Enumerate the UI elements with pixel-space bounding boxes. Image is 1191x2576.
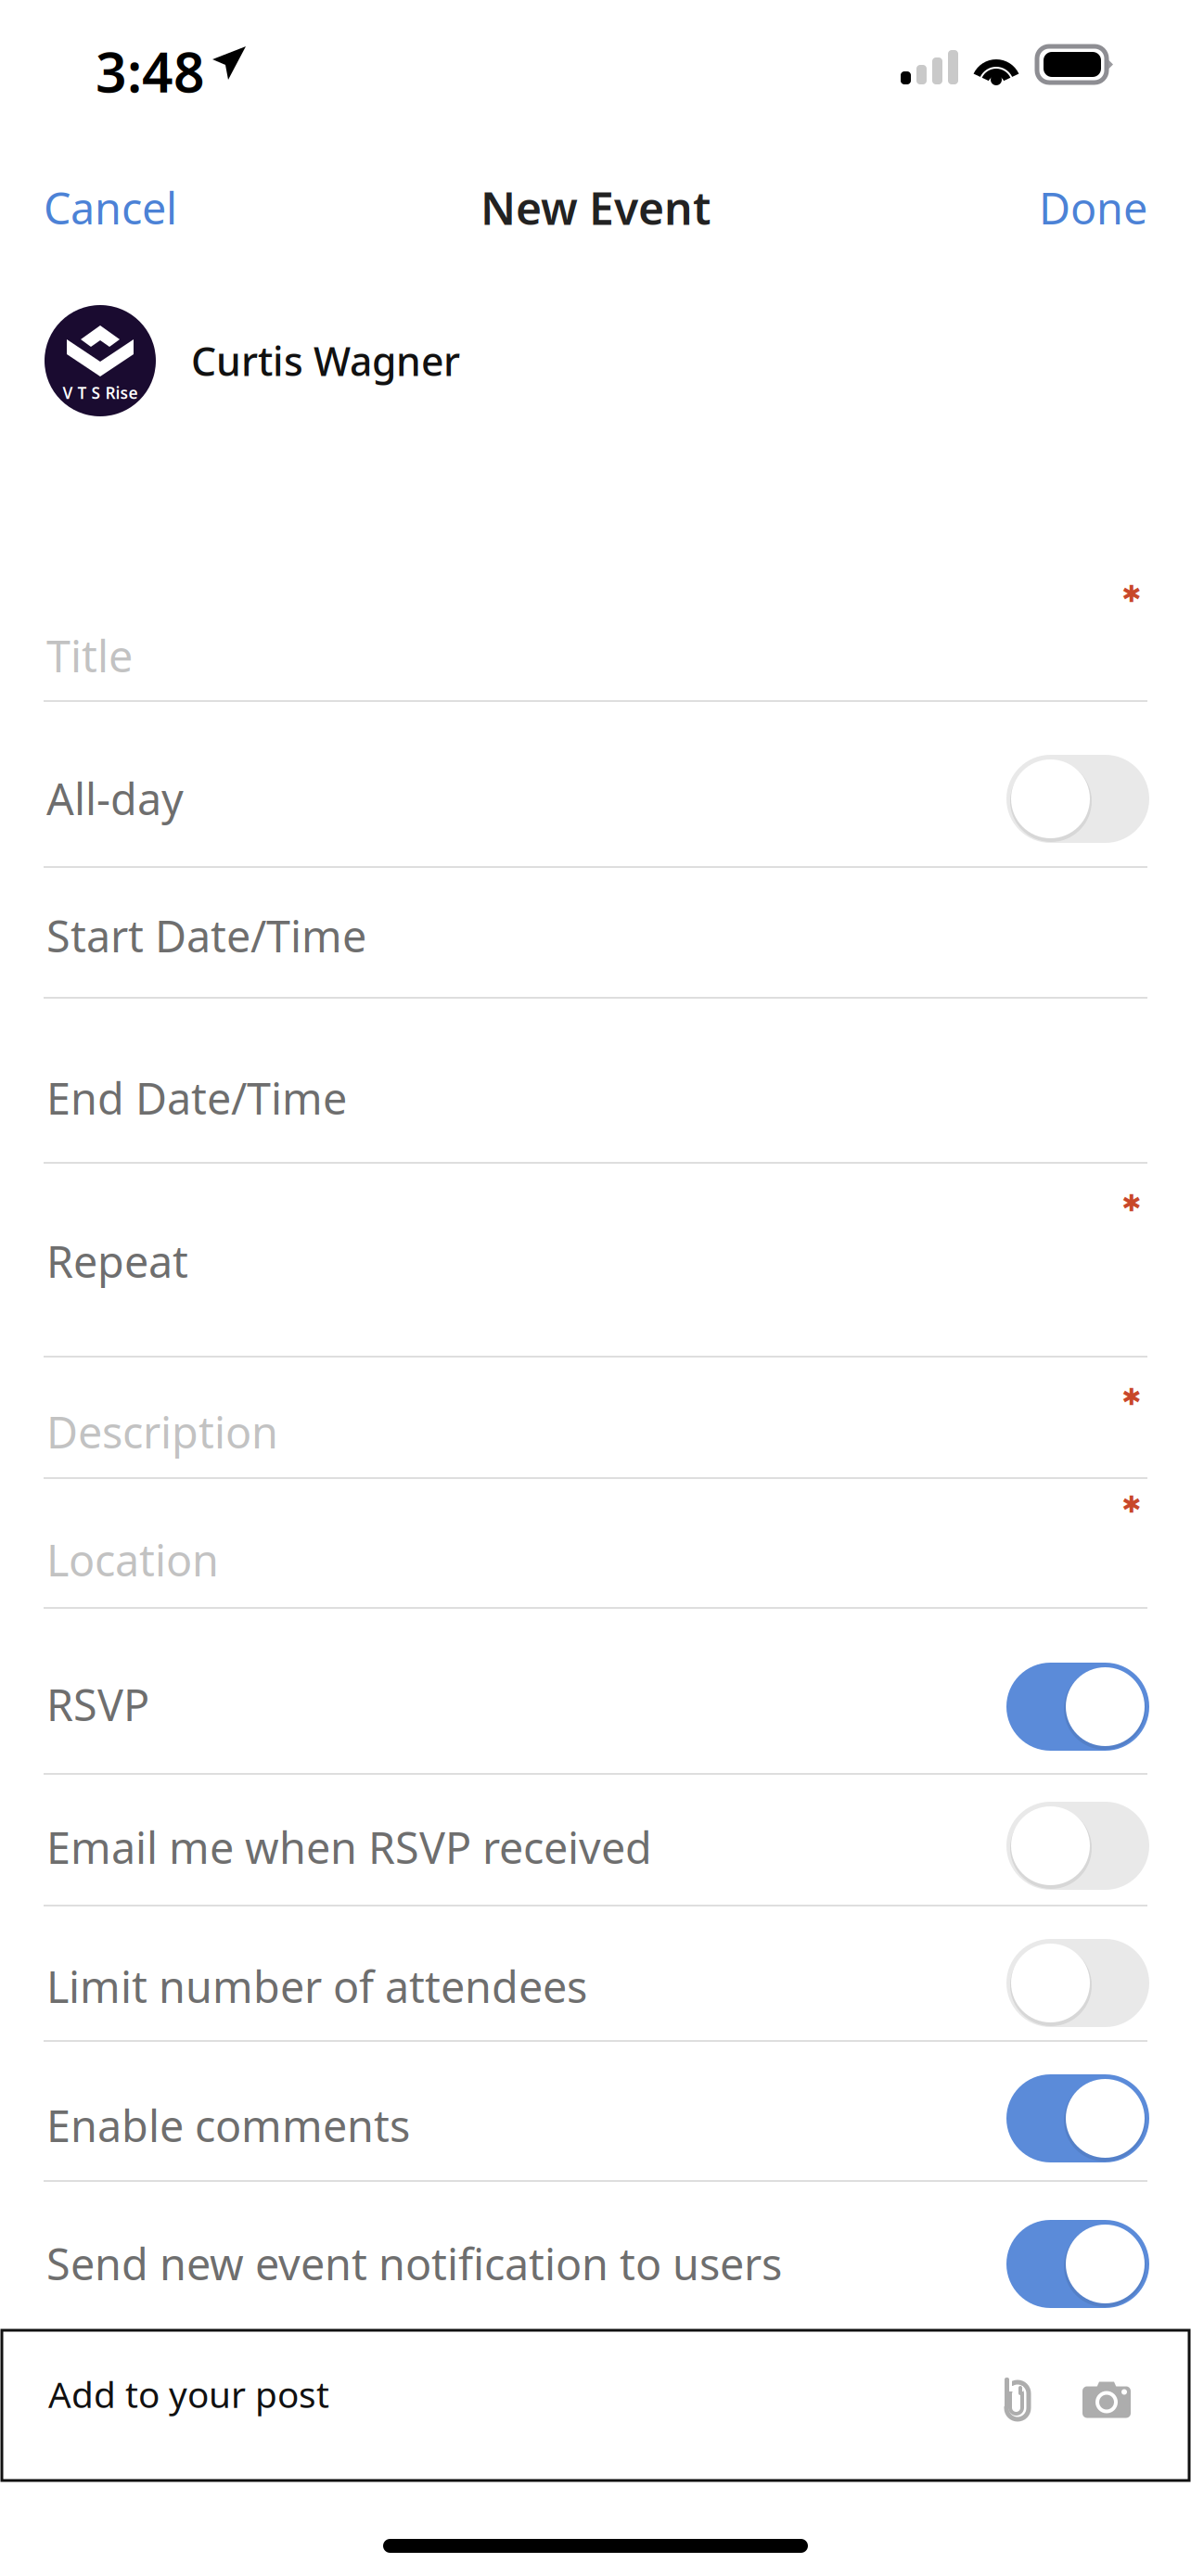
button[interactable]: Done — [1020, 162, 1147, 253]
staticText: End Date/Time — [46, 1069, 347, 1127]
button[interactable]: Send new event notification to users — [0, 2182, 1191, 2330]
button[interactable]: Add to your post — [2, 2330, 329, 2418]
button[interactable]: Attach file — [1003, 2330, 1029, 2419]
button[interactable]: RSVP — [0, 1609, 1191, 1773]
staticText: Enable comments — [46, 2097, 410, 2154]
staticText: Cancel — [44, 179, 177, 236]
button[interactable]: ✱ — [0, 1479, 1191, 1607]
button[interactable]: ✱ — [0, 1164, 1191, 1356]
staticText: ✱ — [1121, 1491, 1141, 1518]
staticText: Description — [46, 1403, 278, 1460]
button[interactable]: ✱ — [0, 540, 1191, 700]
staticText: Limit number of attendees — [46, 1958, 587, 2015]
button[interactable]: Email me when RSVP received — [0, 1775, 1191, 1905]
staticText: ✱ — [1121, 1384, 1141, 1410]
staticText: Add to your post — [48, 2370, 329, 2418]
button[interactable]: Enable comments — [0, 2042, 1191, 2180]
button[interactable]: All-day — [0, 702, 1191, 866]
button[interactable]: End Date/Time — [0, 999, 1191, 1162]
staticText: Repeat — [46, 1232, 188, 1290]
staticText: ✱ — [1121, 580, 1141, 607]
staticText: Send new event notification to users — [46, 2235, 782, 2292]
staticText: ✱ — [1121, 1190, 1141, 1216]
staticText: Done — [1039, 179, 1147, 236]
staticText: V T S Rise — [63, 382, 138, 403]
button[interactable]: Take photo — [1082, 2332, 1131, 2418]
staticText: New Event — [480, 178, 711, 237]
staticText: Curtis Wagner — [191, 334, 460, 387]
staticText: Title — [46, 627, 133, 684]
staticText: Start Date/Time — [46, 907, 366, 964]
button[interactable]: ✱ — [0, 1358, 1191, 1477]
button[interactable]: Limit number of attendees — [0, 1906, 1191, 2040]
staticText: Location — [46, 1531, 219, 1588]
button[interactable]: Cancel — [44, 162, 196, 253]
staticText: 3:48 — [96, 35, 205, 107]
staticText: RSVP — [46, 1676, 149, 1733]
staticText: All-day — [46, 770, 184, 827]
staticText: Email me when RSVP received — [46, 1818, 652, 1876]
button[interactable]: Start Date/Time — [0, 868, 1191, 997]
